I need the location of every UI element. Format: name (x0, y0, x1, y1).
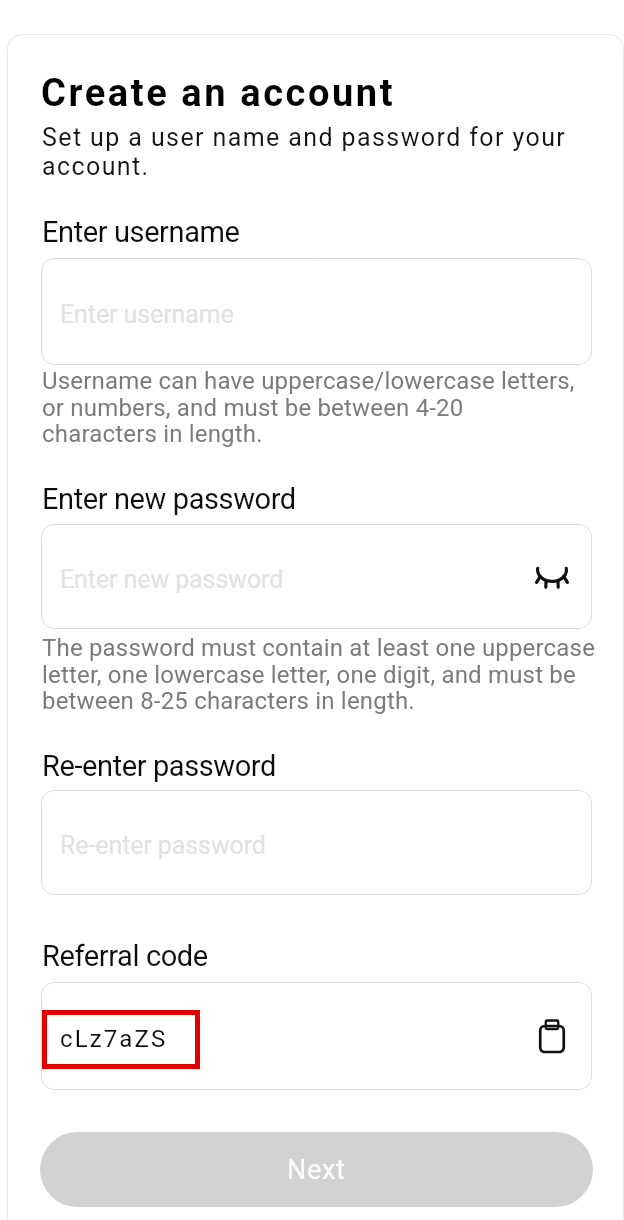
staticText: cLz7aZS (60, 1025, 168, 1053)
button[interactable]: cLz7aZS (41, 982, 592, 1090)
staticText: Username can have uppercase/lowercase le… (42, 367, 575, 448)
staticText: Next (287, 1154, 346, 1186)
staticText: Set up a user name and password for your… (42, 123, 582, 181)
staticText: Create an account (41, 71, 396, 116)
button[interactable]: Re-enter password (41, 790, 592, 895)
staticText: Enter username (60, 300, 234, 329)
staticText: Re-enter password (42, 749, 276, 783)
button[interactable]: Next (40, 1132, 593, 1207)
staticText: Re-enter password (60, 831, 266, 860)
button[interactable]: Copy referral code (530, 1014, 574, 1058)
button[interactable]: Show password (530, 555, 574, 599)
button[interactable]: Enter username (41, 258, 592, 365)
button[interactable]: Enter new password (41, 524, 592, 629)
staticText: Enter username (42, 215, 240, 249)
staticText: Enter new password (42, 482, 296, 516)
staticText: Enter new password (60, 565, 284, 594)
staticText: The password must contain at least one u… (42, 634, 596, 715)
staticText: Referral code (42, 939, 208, 973)
